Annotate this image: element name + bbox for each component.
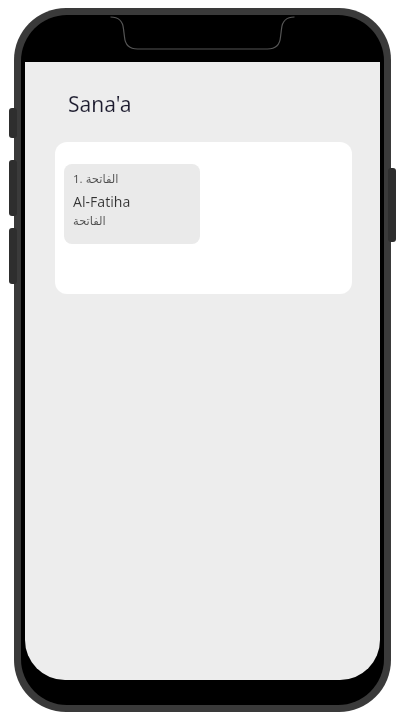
staticText: 1. الفاتحة: [73, 171, 119, 187]
staticText: Al-Fatiha: [73, 192, 131, 211]
button[interactable]: 1. الفاتحة: [64, 164, 200, 244]
staticText: الفاتحة: [73, 214, 106, 227]
button[interactable]: 1. الفاتحة: [55, 142, 352, 294]
staticText: Sana'a: [68, 90, 132, 119]
